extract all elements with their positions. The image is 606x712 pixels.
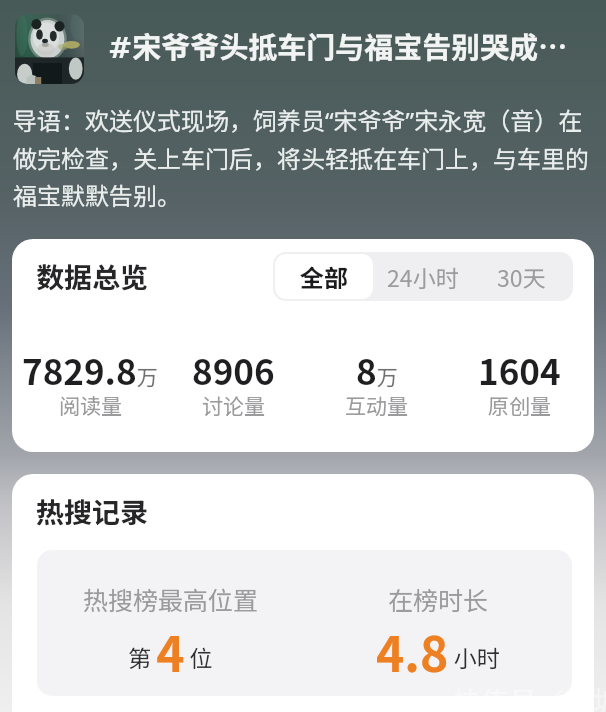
staticText: 热搜记录 [36, 491, 149, 532]
staticText: 1604 [478, 344, 561, 395]
staticText: 阅读量 [59, 390, 122, 420]
staticText: 热搜榜最高位置 [83, 581, 259, 617]
staticText: 在榜时长 [388, 581, 489, 617]
staticText: 8906 [192, 344, 275, 395]
staticText: 原创量 [488, 390, 551, 420]
staticText: 数据总览 [36, 256, 149, 297]
staticText: 7829.8万 [22, 344, 158, 395]
button[interactable]: 30天 [472, 254, 571, 299]
button[interactable]: Topic avatar [15, 14, 84, 84]
staticText: 快传号／荷塘月色 [453, 680, 606, 712]
staticText: 第 4 位 [128, 616, 213, 686]
button[interactable]: 24小时 [373, 254, 472, 299]
button[interactable]: 全部 [275, 254, 373, 299]
staticText: 24小时 [387, 260, 459, 293]
staticText: 8万 [356, 344, 398, 395]
staticText: 导语：欢送仪式现场，饲养员“宋爷爷”宋永宽（音）在做完检查，关上车门后，将头轻抵… [13, 102, 598, 212]
staticText: #宋爷爷头抵车门与福宝告别哭成… [108, 24, 568, 66]
staticText: 4.8 小时 [376, 616, 500, 686]
staticText: 讨论量 [202, 390, 265, 420]
staticText: 30天 [497, 260, 546, 293]
staticText: 全部 [300, 259, 348, 294]
staticText: 互动量 [345, 390, 408, 420]
